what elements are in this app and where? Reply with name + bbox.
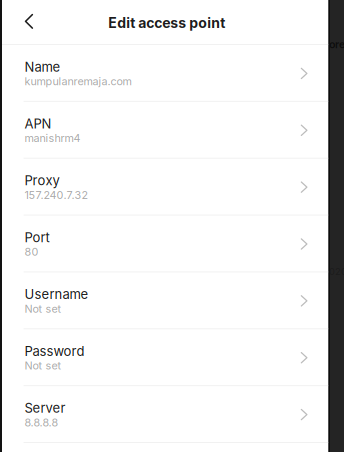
- staticText: kumpulanremaja.com: [25, 75, 132, 88]
- staticText: APN: [25, 116, 52, 132]
- staticText: 020: [329, 266, 344, 277]
- staticText: manishrm4: [25, 132, 81, 145]
- staticText: Server: [25, 400, 66, 416]
- staticText: Not set: [25, 359, 62, 372]
- button[interactable]: Password: [2, 329, 328, 385]
- button[interactable]: APN: [2, 102, 328, 158]
- staticText: 157.240.7.32: [25, 188, 89, 202]
- staticText: Not set: [25, 302, 62, 315]
- staticText: 80: [25, 245, 39, 258]
- staticText: Name: [25, 59, 61, 75]
- staticText: 8.8.8.8: [25, 416, 59, 429]
- staticText: Username: [25, 286, 89, 302]
- button[interactable]: Back: [2, 0, 48, 44]
- staticText: Edit access point: [108, 14, 225, 31]
- staticText: Port: [25, 230, 50, 245]
- staticText: ore: [329, 38, 344, 51]
- button[interactable]: Server: [2, 386, 328, 442]
- staticText: Proxy: [25, 173, 60, 188]
- button[interactable]: Username: [2, 272, 328, 328]
- button[interactable]: Name: [2, 45, 328, 101]
- button[interactable]: Port: [2, 216, 328, 271]
- staticText: Password: [25, 343, 85, 359]
- button[interactable]: Proxy: [2, 159, 328, 215]
